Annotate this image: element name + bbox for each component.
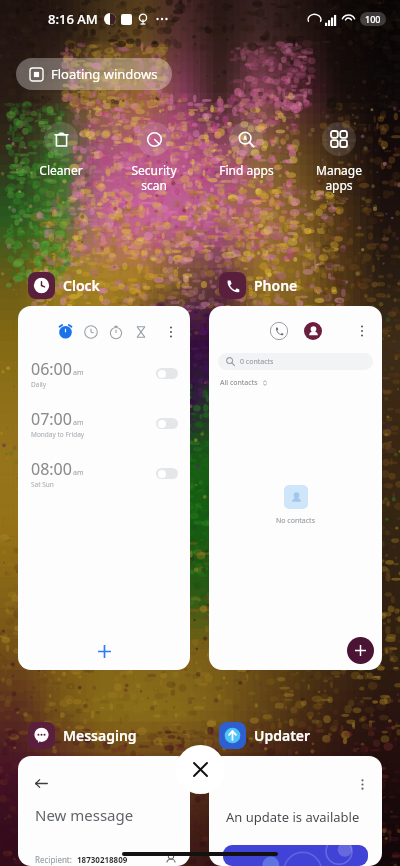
button[interactable]: Toggle alarm [156, 368, 178, 379]
staticText: Recipient: [35, 854, 72, 865]
staticText: No contacts [276, 516, 315, 526]
button[interactable]: Toggle alarm [156, 418, 178, 429]
staticText: Daily [31, 380, 47, 389]
staticText: 100 [365, 13, 381, 25]
button[interactable]: Security scan [123, 122, 185, 193]
staticText: 0 contacts [240, 357, 274, 367]
button[interactable]: New message [18, 756, 190, 866]
staticText: 08:00 [31, 458, 72, 480]
staticText: Phone [254, 276, 298, 295]
button[interactable]: Toggle alarm [156, 468, 178, 479]
staticText: Sat Sun [31, 480, 54, 489]
button[interactable]: Add contact [347, 637, 374, 664]
button[interactable]: Floating windows [16, 58, 172, 90]
staticText: Security scan [131, 162, 177, 193]
button[interactable]: Cleaner [30, 122, 92, 178]
staticText: 06:00 [31, 358, 72, 380]
staticText: Floating windows [51, 65, 158, 83]
button[interactable]: Clock [28, 272, 100, 299]
staticText: am [73, 468, 84, 478]
button[interactable]: An update is available [209, 756, 382, 866]
staticText: An update is available [226, 808, 360, 826]
staticText: All contacts [220, 378, 258, 388]
staticText: Updater [254, 726, 311, 745]
button[interactable]: 0 contacts [209, 306, 382, 670]
button[interactable]: Manage apps [308, 122, 370, 193]
staticText: 07:00 [31, 408, 72, 430]
staticText: Cleaner [39, 162, 83, 178]
staticText: Messaging [63, 726, 137, 745]
button[interactable]: 06:00 [18, 306, 190, 670]
button[interactable]: Close all [176, 745, 225, 794]
staticText: Clock [63, 276, 100, 295]
staticText: 18730218809 [77, 854, 128, 865]
staticText: am [73, 368, 84, 378]
staticText: Manage apps [316, 162, 362, 193]
staticText: Monday to Friday [31, 430, 85, 439]
staticText: Find apps [219, 162, 274, 178]
staticText: 8:16 AM [48, 10, 98, 28]
button[interactable]: Messaging [28, 722, 137, 749]
button[interactable]: Add alarm [89, 636, 119, 666]
button[interactable]: 0 contacts [218, 353, 373, 370]
staticText: am [73, 418, 84, 428]
button[interactable]: Phone [219, 272, 298, 299]
button[interactable]: All contacts [220, 378, 268, 388]
staticText: New message [35, 805, 134, 825]
button[interactable]: Updater [219, 722, 311, 749]
button[interactable]: Find apps [215, 122, 277, 178]
